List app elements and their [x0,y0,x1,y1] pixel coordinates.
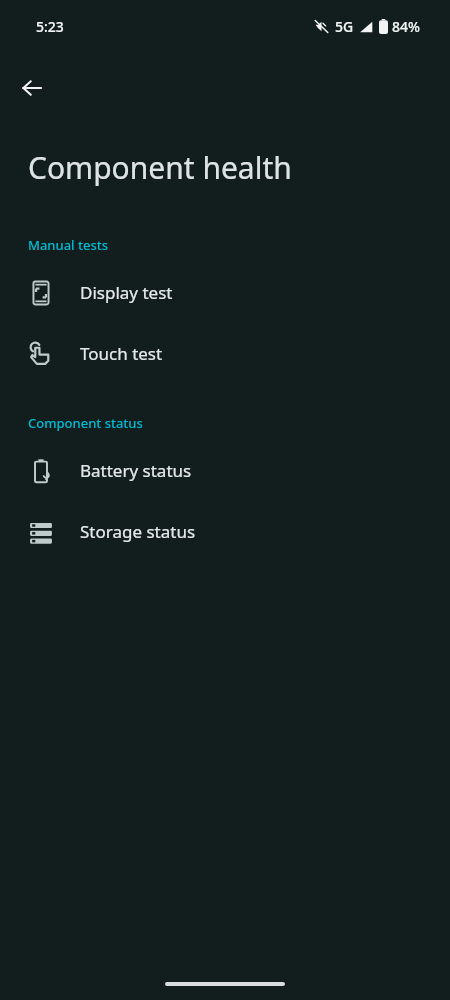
button[interactable]: Display test [0,262,450,323]
staticText: Touch test [80,342,163,365]
button[interactable]: Back [8,64,56,112]
staticText: 5:23 [36,17,64,36]
staticText: 5G [335,17,354,36]
staticText: Component health [28,147,292,188]
button[interactable]: Touch test [0,323,450,384]
button[interactable]: Battery status [0,440,450,501]
staticText: Manual tests [28,236,109,254]
staticText: Storage status [80,520,196,543]
staticText: 84% [392,17,420,36]
button[interactable]: Storage status [0,501,450,562]
staticText: Battery status [80,459,192,482]
staticText: Display test [80,281,173,304]
staticText: Component status [28,414,143,432]
